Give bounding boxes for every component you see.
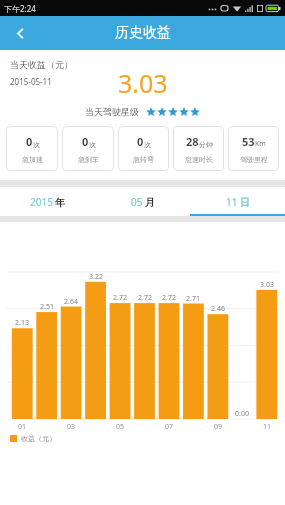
staticText: 2.72 — [162, 293, 176, 303]
staticText: 驾驶里程 — [240, 155, 268, 164]
button[interactable]: 11 — [190, 187, 285, 216]
staticText: 下午2:24 — [4, 3, 36, 14]
staticText: 次 — [89, 140, 96, 149]
staticText: 01 — [18, 422, 27, 432]
staticText: 急刹车 — [78, 155, 99, 164]
staticText: 09 — [214, 422, 223, 432]
staticText: 05 — [116, 422, 125, 432]
staticText: 11 — [263, 422, 272, 432]
staticText: Km — [255, 139, 266, 149]
staticText: 2.71 — [186, 294, 200, 304]
staticText: 收益（元） — [21, 434, 56, 443]
staticText: 2.72 — [138, 293, 152, 303]
staticText: 历史收益 — [115, 24, 171, 42]
staticText: 年 — [55, 196, 65, 209]
staticText: 3.03 — [118, 66, 168, 100]
staticText: 3.03 — [260, 280, 274, 290]
staticText: 2.64 — [64, 297, 78, 307]
staticText: 2.72 — [113, 293, 127, 303]
button[interactable]: 0 — [62, 126, 114, 171]
staticText: 日 — [240, 196, 250, 209]
button[interactable]: 53 — [228, 126, 279, 171]
staticText: 2.46 — [211, 304, 225, 314]
staticText: 53 — [242, 134, 255, 149]
staticText: 0.00 — [235, 409, 249, 419]
staticText: 05 — [131, 195, 143, 209]
staticText: 07 — [165, 422, 174, 432]
staticText: 2.13 — [15, 318, 29, 328]
staticText: 0 — [26, 134, 33, 149]
staticText: 分钟 — [199, 140, 213, 149]
button[interactable]: 0 — [6, 126, 58, 171]
button[interactable]: 05 — [95, 187, 190, 216]
staticText: 次 — [144, 140, 151, 149]
button[interactable]: 0 — [118, 126, 169, 171]
staticText: 28 — [186, 134, 199, 149]
staticText: 急加速 — [22, 155, 43, 164]
staticText: 急转弯 — [133, 155, 154, 164]
staticText: 2015-05-11 — [10, 76, 52, 87]
staticText: 月 — [145, 196, 155, 209]
staticText: 当天驾驶星级 — [85, 106, 139, 117]
staticText: 2015 — [30, 195, 53, 209]
button[interactable]: 28 — [173, 126, 224, 171]
staticText: 3.22 — [89, 272, 103, 282]
staticText: 03 — [67, 422, 76, 432]
button[interactable]: Back — [0, 16, 40, 50]
staticText: 次 — [33, 140, 40, 149]
staticText: 11 — [226, 195, 238, 209]
staticText: 怠速时长 — [185, 155, 213, 164]
staticText: 0 — [137, 134, 144, 149]
staticText: 2.51 — [40, 302, 54, 312]
button[interactable]: 2015 — [0, 187, 95, 216]
staticText: 当天收益（元） — [10, 59, 73, 70]
staticText: 0 — [82, 134, 89, 149]
